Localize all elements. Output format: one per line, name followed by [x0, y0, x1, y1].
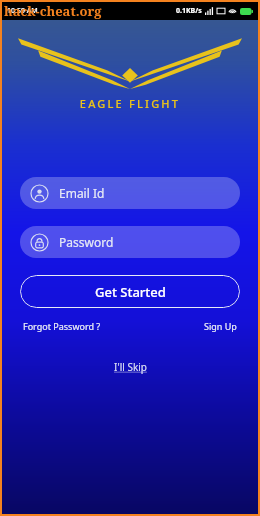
button[interactable]: Get Started — [20, 275, 240, 308]
button[interactable]: Forgot Password ? — [23, 320, 101, 332]
staticText: EAGLE FLIGHT — [2, 96, 258, 111]
staticText: Password — [59, 234, 114, 250]
staticText: Email Id — [59, 185, 105, 201]
button[interactable]: I'll Skip — [114, 360, 147, 374]
button[interactable]: Sign Up — [204, 320, 237, 332]
staticText: I'll Skip — [114, 360, 147, 374]
staticText: Sign Up — [204, 320, 237, 332]
staticText: hack-cheat.org — [4, 2, 102, 20]
staticText: Get Started — [95, 283, 166, 301]
staticText: 10:59 AM — [7, 6, 38, 16]
button[interactable]: Password — [20, 226, 240, 258]
staticText: 0.1KB/s — [176, 6, 202, 16]
staticText: Forgot Password ? — [23, 320, 101, 332]
button[interactable]: Email Id — [20, 177, 240, 209]
